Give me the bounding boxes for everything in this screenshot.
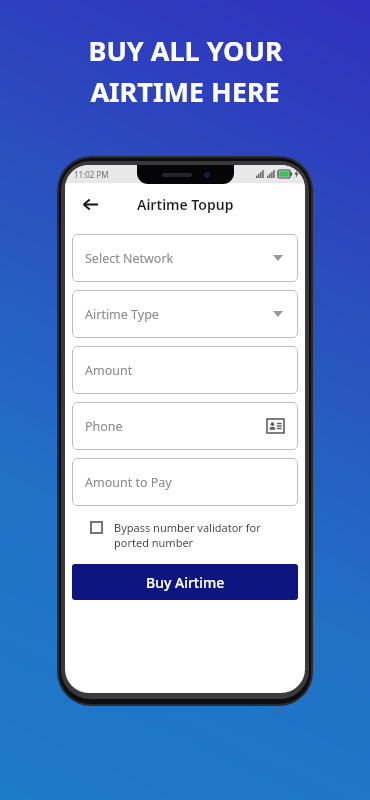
button[interactable]: Buy Airtime <box>72 564 298 600</box>
staticText: Airtime Type <box>85 306 159 323</box>
staticText: Select Network <box>85 250 174 267</box>
button[interactable]: Airtime Type <box>72 290 298 338</box>
button[interactable]: Phone <box>72 402 298 450</box>
button[interactable]: Amount to Pay <box>72 458 298 506</box>
staticText: Amount <box>85 362 133 379</box>
staticText: Amount to Pay <box>85 474 172 491</box>
button[interactable]: Bypass number validator for ported numbe… <box>72 518 298 552</box>
staticText: Airtime Topup <box>137 195 234 214</box>
staticText: Buy Airtime <box>146 573 225 592</box>
staticText: 11:02 PM <box>74 169 109 180</box>
button[interactable]: Amount <box>72 346 298 394</box>
button[interactable]: Select Network <box>72 234 298 282</box>
button[interactable]: Pick contact <box>265 416 285 436</box>
staticText: BUY ALL YOUR <box>88 32 283 69</box>
staticText: Bypass number validator for ported numbe… <box>114 520 298 550</box>
staticText: AIRTIME HERE <box>90 73 280 110</box>
button[interactable]: Back <box>77 191 103 217</box>
staticText: Phone <box>85 418 123 435</box>
